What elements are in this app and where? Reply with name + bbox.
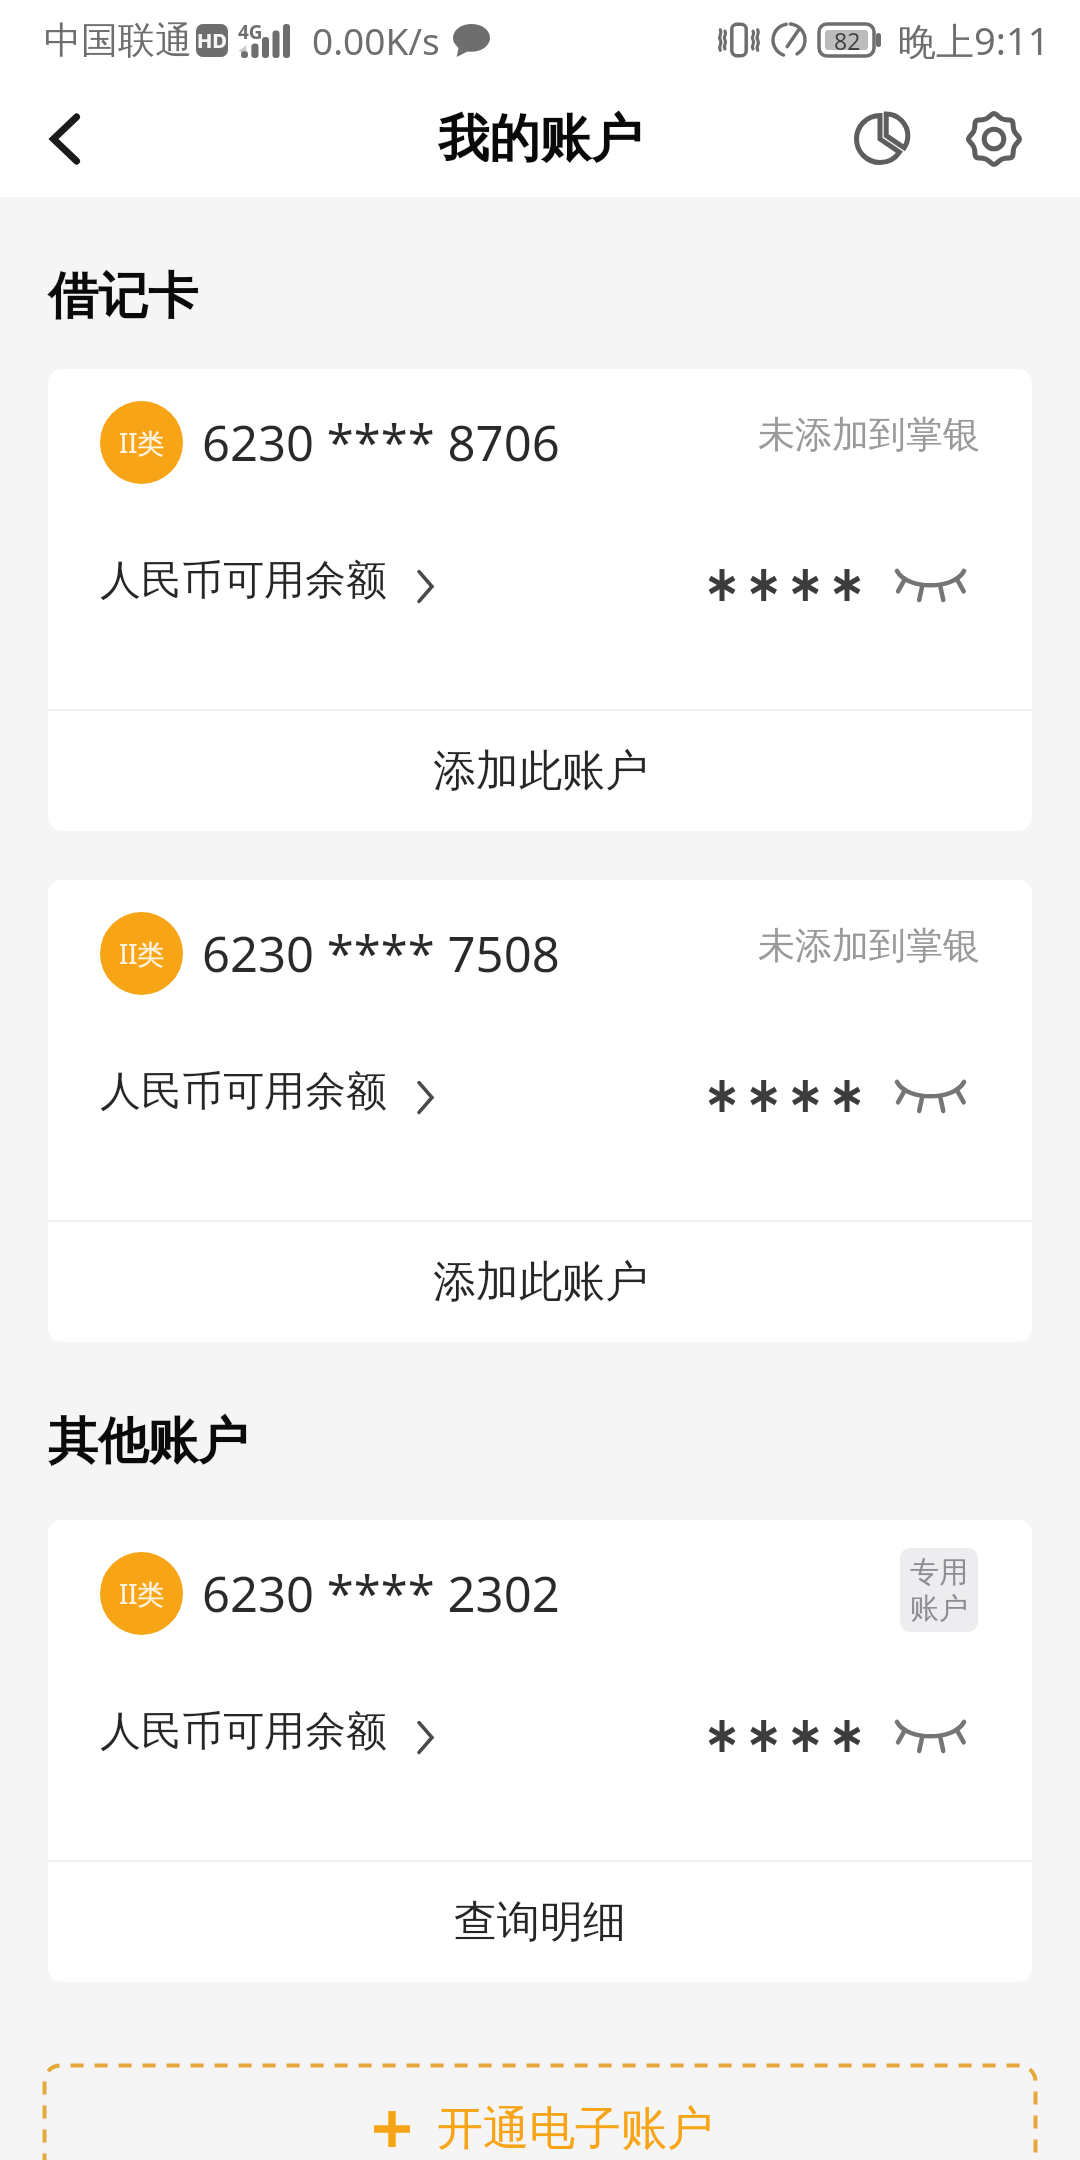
staticText: 人民币可用余额 [100, 1066, 387, 1118]
staticText: 添加此账户 [433, 744, 648, 798]
staticText: 4G [238, 19, 263, 45]
staticText: 查询明细 [454, 1895, 626, 1949]
staticText: 人民币可用余额 [100, 555, 387, 607]
staticText: II类 [119, 424, 165, 461]
button[interactable]: II类 [48, 1520, 1032, 1982]
button[interactable]: 添加此账户 [48, 711, 1032, 831]
staticText: 6230 **** 8706 [202, 409, 560, 476]
staticText: II类 [119, 1575, 165, 1612]
button[interactable]: 开通电子账户 [43, 2064, 1037, 2160]
staticText: 0.00K/s [312, 15, 440, 65]
staticText: II类 [119, 935, 165, 972]
button[interactable]: 人民币可用余额 [100, 1706, 434, 1758]
button[interactable]: Statistics [832, 91, 928, 187]
button[interactable]: Settings [946, 91, 1042, 187]
staticText: 借记卡 [48, 265, 198, 328]
button[interactable]: Show balance [884, 549, 977, 621]
button[interactable]: II类 [48, 369, 1032, 831]
staticText: 6230 **** 2302 [202, 1560, 560, 1627]
button[interactable]: 查询明细 [48, 1862, 1032, 1982]
button[interactable]: Show balance [884, 1060, 977, 1132]
staticText: 晚上9:11 [898, 14, 1050, 66]
staticText: 开通电子账户 [437, 2100, 713, 2158]
staticText: 未添加到掌银 [758, 922, 980, 969]
staticText: 其他账户 [48, 1410, 248, 1473]
button[interactable]: Show balance [884, 1700, 977, 1772]
button[interactable]: 人民币可用余额 [100, 1066, 434, 1118]
staticText: 人民币可用余额 [100, 1706, 387, 1758]
staticText: 未添加到掌银 [758, 411, 980, 458]
staticText: 中国联通 [44, 17, 192, 64]
staticText: 82 [834, 25, 861, 56]
button[interactable]: II类 [48, 880, 1032, 1342]
staticText: 专用 账户 [910, 1554, 968, 1626]
staticText: 添加此账户 [433, 1255, 648, 1309]
button[interactable]: Back [17, 91, 113, 187]
button[interactable]: 添加此账户 [48, 1222, 1032, 1342]
staticText: 我的账户 [438, 107, 642, 171]
staticText: HD [197, 27, 227, 54]
button[interactable]: 人民币可用余额 [100, 555, 434, 607]
staticText: 6230 **** 7508 [202, 920, 560, 987]
